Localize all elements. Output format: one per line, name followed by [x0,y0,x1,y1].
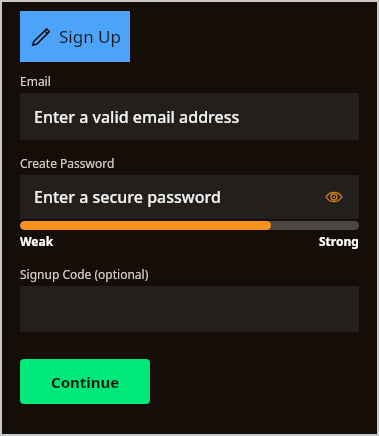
button[interactable]: Show password [323,186,345,208]
button[interactable]: Enter a secure password [20,175,359,219]
staticText: Sign Up [59,25,121,48]
staticText: Weak [20,233,54,249]
staticText: Enter a valid email address [34,106,240,128]
staticText: Continue [51,372,120,392]
staticText: Create Password [20,155,115,171]
button[interactable]: Continue [20,359,150,404]
staticText: Enter a secure password [34,186,221,208]
staticText: Email [20,73,51,89]
staticText: Signup Code (optional) [20,266,149,282]
button[interactable]: Sign Up [20,11,130,62]
button[interactable]: Enter a valid email address [20,93,359,140]
staticText: Strong [319,233,359,249]
